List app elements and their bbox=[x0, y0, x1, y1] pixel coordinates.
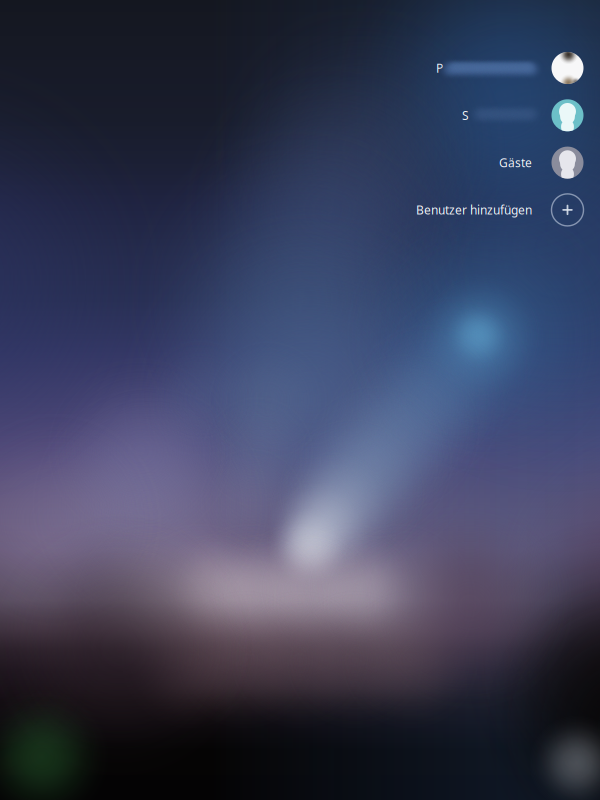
button[interactable]: S bbox=[0, 0, 600, 800]
staticText: Benutzer hinzufügen bbox=[416, 202, 532, 218]
staticText: Gäste bbox=[499, 155, 532, 170]
button[interactable]: P bbox=[0, 0, 600, 800]
staticText: S bbox=[462, 107, 469, 123]
button[interactable]: Benutzer hinzufügen bbox=[0, 0, 600, 800]
staticText: P bbox=[436, 60, 443, 76]
button[interactable]: Gäste bbox=[0, 0, 600, 800]
